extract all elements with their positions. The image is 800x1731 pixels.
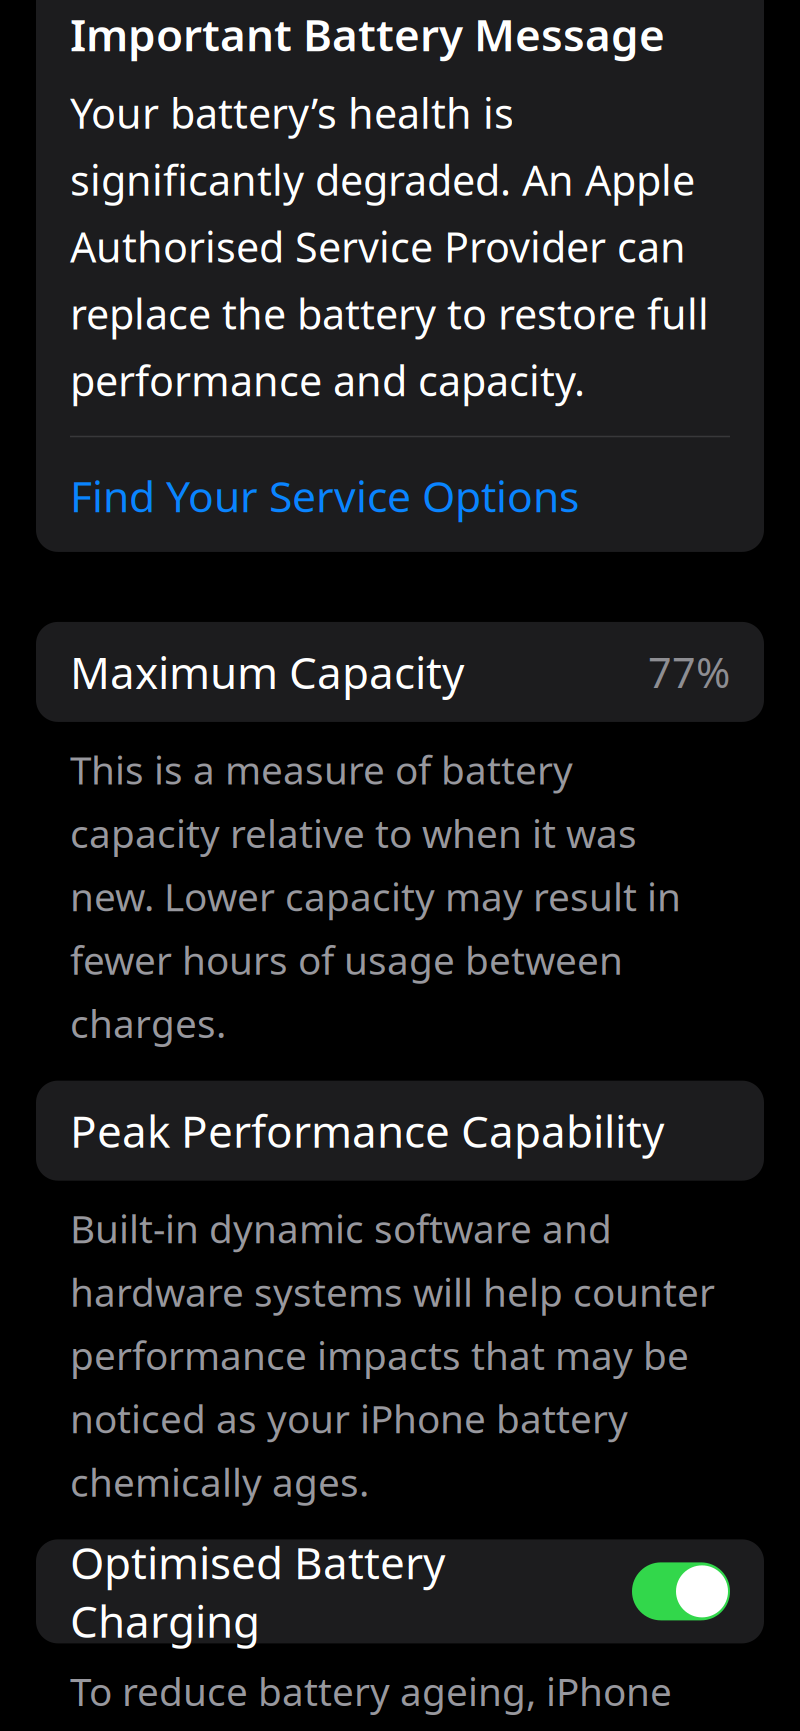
- button[interactable]: Peak Performance Capability: [36, 1081, 764, 1181]
- staticText: Built-in dynamic software and hardware s…: [70, 1203, 715, 1507]
- staticText: This is a measure of battery capacity re…: [70, 744, 681, 1049]
- staticText: To reduce battery ageing, iPhone learns …: [70, 1665, 726, 1731]
- staticText: Optimised Battery Charging: [70, 1533, 445, 1650]
- staticText: Maximum Capacity: [70, 643, 464, 701]
- staticText: Your battery’s health is significantly d…: [70, 85, 709, 408]
- staticText: Find Your Service Options: [70, 467, 579, 524]
- staticText: Important Battery Message: [70, 5, 665, 63]
- button[interactable]: Maximum Capacity: [36, 622, 764, 722]
- staticText: 77%: [648, 644, 730, 699]
- staticText: Peak Performance Capability: [70, 1101, 664, 1160]
- button[interactable]: Optimised Battery Charging: [36, 1539, 764, 1643]
- button[interactable]: Find Your Service Options: [70, 437, 730, 552]
